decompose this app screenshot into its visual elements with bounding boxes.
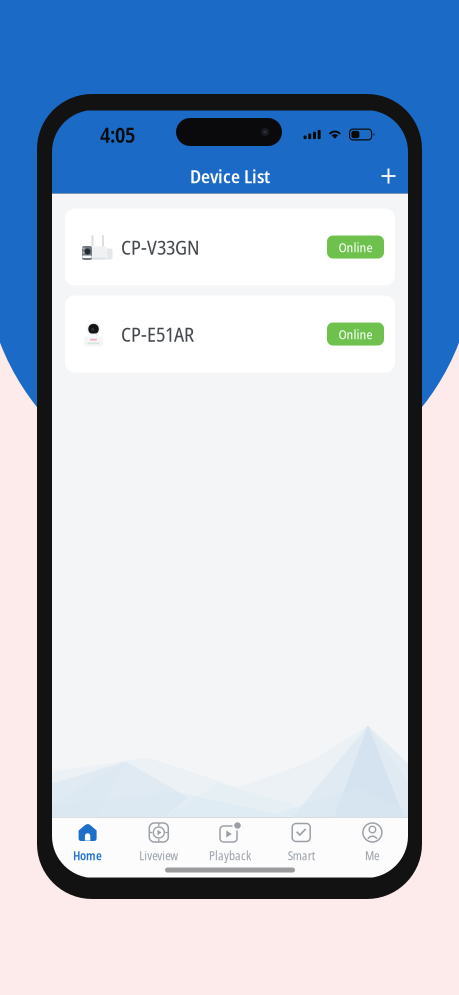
staticText: Me — [365, 847, 380, 864]
staticText: Online — [338, 238, 372, 256]
staticText: 4:05 — [100, 120, 135, 149]
staticText: CP-V33GN — [121, 233, 200, 261]
staticText: CP-E51AR — [121, 320, 194, 348]
button[interactable]: Add device — [368, 158, 408, 193]
button[interactable]: Smart — [266, 817, 337, 859]
button[interactable]: Playback — [194, 817, 266, 859]
staticText: Liveview — [139, 847, 178, 864]
staticText: Smart — [288, 847, 315, 864]
staticText: Home — [73, 847, 102, 864]
button[interactable]: Home — [52, 817, 123, 859]
button[interactable]: CP-V33GN — [65, 208, 395, 285]
button[interactable]: CP-E51AR — [65, 295, 395, 372]
button[interactable]: Me — [337, 817, 408, 859]
button[interactable]: Liveview — [123, 817, 194, 859]
staticText: Online — [338, 325, 372, 343]
staticText: Device List — [190, 163, 270, 189]
staticText: Playback — [209, 847, 251, 864]
